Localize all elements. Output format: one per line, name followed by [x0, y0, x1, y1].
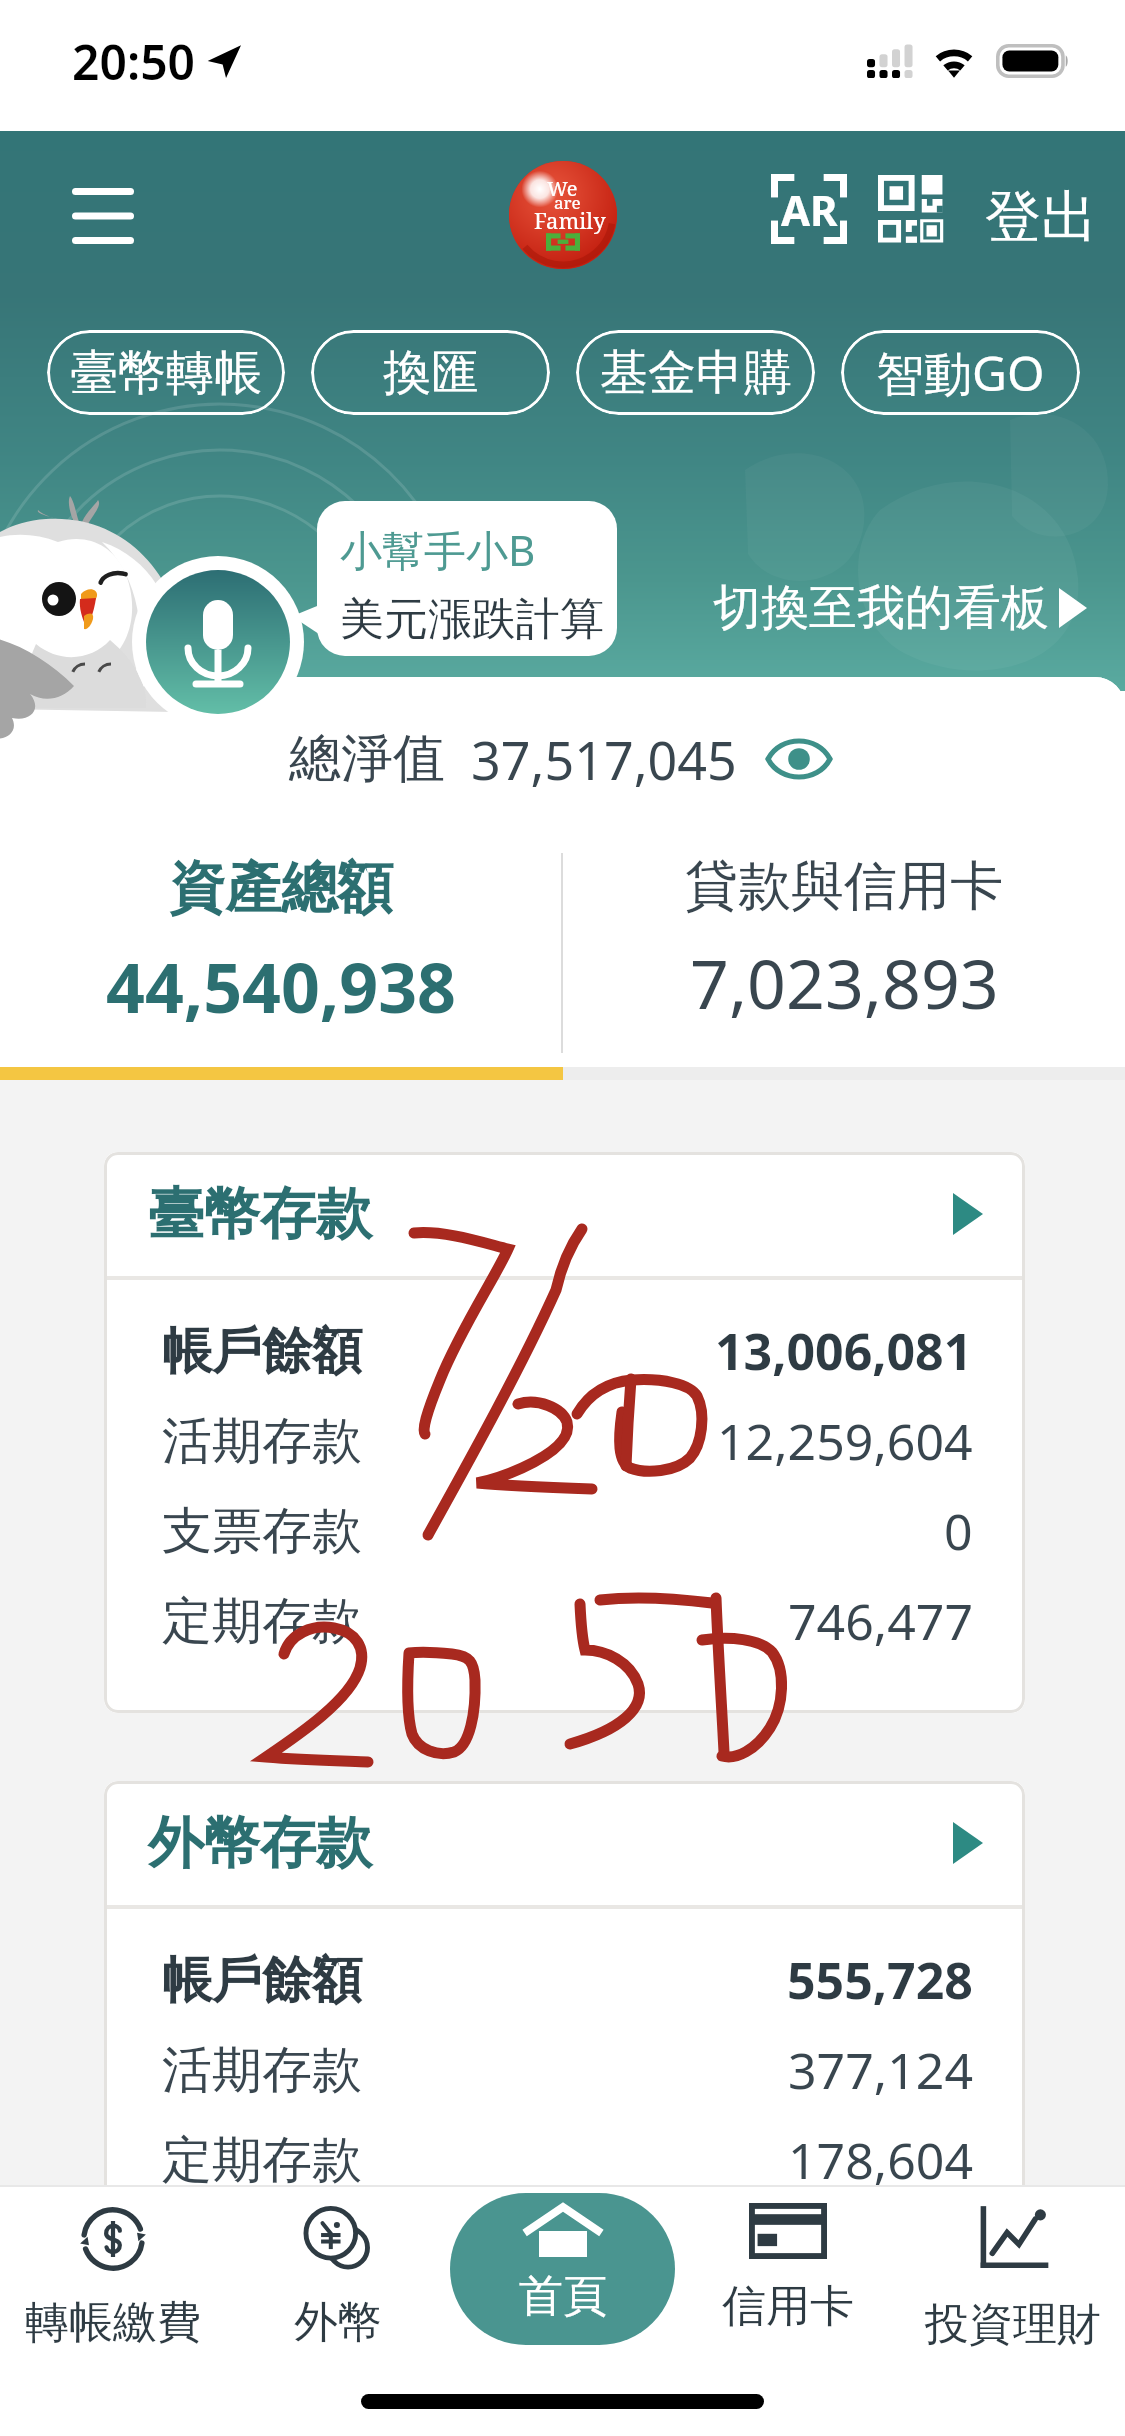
staticText: We	[547, 175, 578, 202]
staticText: 12,259,604	[717, 1407, 973, 1475]
button[interactable]: 臺幣存款	[104, 1152, 1025, 1276]
staticText: 基金申購	[600, 343, 792, 403]
staticText: 活期存款	[162, 2039, 362, 2102]
staticText: 0	[944, 1497, 973, 1565]
staticText: AR	[781, 181, 838, 238]
staticText: 換匯	[383, 343, 479, 403]
button[interactable]: 基金申購	[576, 330, 815, 415]
button[interactable]: 切換至我的看板	[713, 578, 1087, 638]
staticText: Family	[534, 205, 606, 235]
staticText: 帳戶餘額	[162, 1949, 362, 2012]
button[interactable]: 投資理財	[900, 2185, 1125, 2370]
staticText: 資產總額	[169, 853, 393, 924]
staticText: 活期存款	[162, 1410, 362, 1473]
staticText: 登出	[985, 182, 1097, 253]
button[interactable]: 登出	[965, 170, 1107, 257]
staticText: 臺幣存款	[148, 1179, 372, 1250]
button[interactable]: 智動GO	[841, 330, 1080, 415]
button[interactable]: 臺幣轉帳	[47, 330, 285, 415]
staticText: 377,124	[788, 2036, 973, 2104]
staticText: 555,728	[787, 1946, 973, 2014]
button[interactable]: 首頁	[450, 2193, 675, 2345]
staticText: 13,006,081	[715, 1317, 973, 1385]
button[interactable]: 換匯	[311, 330, 550, 415]
button[interactable]: Scan QR code	[861, 161, 965, 257]
staticText: 44,540,938	[106, 940, 456, 1033]
button[interactable]: 外幣	[225, 2185, 450, 2370]
staticText: are	[554, 191, 581, 214]
staticText: 37,517,045	[471, 724, 737, 795]
staticText: 帳戶餘額	[162, 1320, 362, 1383]
staticText: 小幫手小B	[340, 521, 536, 578]
staticText: 定期存款	[162, 2129, 362, 2185]
staticText: 切換至我的看板	[713, 578, 1049, 638]
staticText: 7,023,893	[690, 936, 999, 1029]
button[interactable]: Menu	[48, 161, 158, 271]
button[interactable]: We are family logo	[503, 155, 623, 275]
staticText: 首頁	[519, 2269, 607, 2324]
button[interactable]: 小幫手小B	[317, 501, 617, 656]
button[interactable]: 貸款與信用卡	[563, 853, 1125, 1053]
staticText: 智動GO	[876, 340, 1045, 406]
staticText: 746,477	[788, 1587, 973, 1655]
button[interactable]: 信用卡	[675, 2185, 900, 2370]
staticText: 信用卡	[722, 2279, 854, 2334]
staticText: 定期存款	[162, 1590, 362, 1653]
button[interactable]: AR	[757, 161, 861, 257]
button[interactable]: 資產總額	[0, 853, 561, 1053]
staticText: 臺幣轉帳	[70, 343, 262, 403]
button[interactable]: 轉帳繳費	[0, 2185, 225, 2370]
staticText: 投資理財	[925, 2297, 1101, 2352]
staticText: 美元漲跌計算	[340, 592, 604, 647]
staticText: 外幣	[294, 2295, 382, 2350]
staticText: 支票存款	[162, 1500, 362, 1563]
button[interactable]: 外幣存款	[104, 1781, 1025, 1905]
button[interactable]: Toggle amount visibility	[761, 721, 837, 797]
staticText: 貸款與信用卡	[685, 853, 1003, 920]
staticText: 轉帳繳費	[25, 2295, 201, 2350]
staticText: 20:50	[72, 29, 196, 94]
staticText: 外幣存款	[148, 1808, 372, 1879]
staticText: 總淨值	[289, 726, 445, 792]
staticText: 178,604	[788, 2126, 973, 2185]
